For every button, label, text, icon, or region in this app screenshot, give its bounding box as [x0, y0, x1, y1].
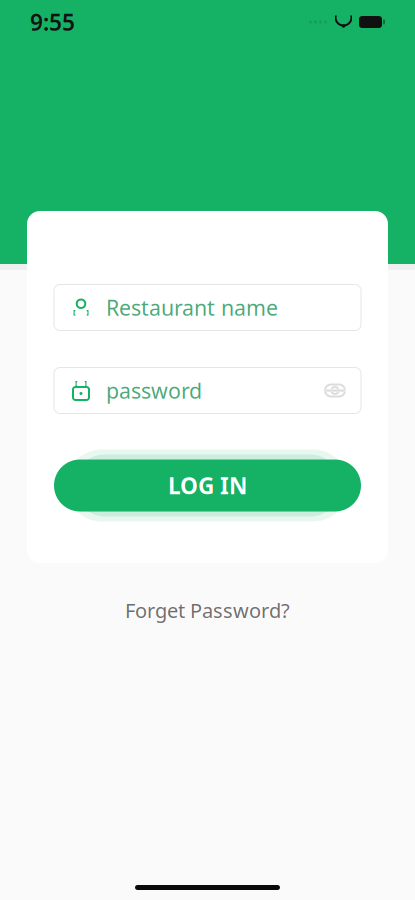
staticText: LOG IN: [168, 470, 247, 500]
staticText: password: [106, 376, 202, 405]
button[interactable]: Forget Password?: [109, 591, 306, 630]
staticText: Forget Password?: [125, 597, 290, 624]
staticText: Restaurant name: [106, 293, 278, 322]
staticText: 9:55: [30, 7, 75, 37]
button[interactable]: LOG IN: [54, 459, 361, 511]
